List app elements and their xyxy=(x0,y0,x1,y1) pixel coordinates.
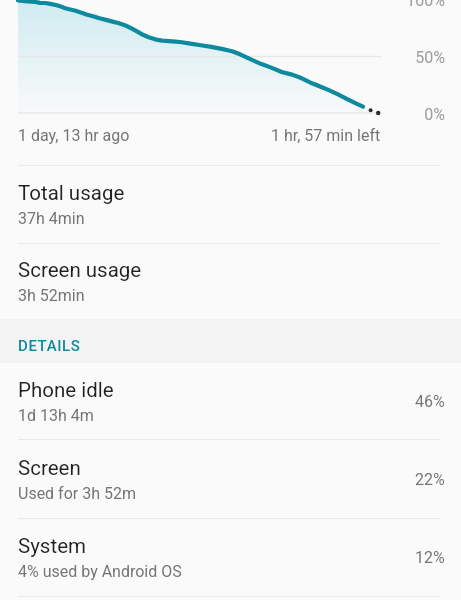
staticText: 3h 52min xyxy=(18,286,85,305)
staticText: Used for 3h 52m xyxy=(18,484,136,503)
staticText: 1d 13h 4m xyxy=(18,406,94,425)
staticText: 50% xyxy=(0,48,445,67)
button[interactable]: System xyxy=(0,519,461,596)
button[interactable]: Screen xyxy=(0,440,461,518)
button[interactable]: Screen usage xyxy=(0,244,461,319)
staticText: 0% xyxy=(0,105,445,124)
staticText: 4% used by Android OS xyxy=(18,562,182,581)
staticText: 46% xyxy=(415,392,445,411)
staticText: 12% xyxy=(415,548,445,567)
other: Battery level history graph xyxy=(0,0,461,118)
staticText: Phone idle xyxy=(18,378,114,402)
staticText: 1 day, 13 hr ago xyxy=(18,126,130,145)
staticText: DETAILS xyxy=(18,337,81,355)
staticText: Screen xyxy=(18,456,81,480)
staticText: 37h 4min xyxy=(18,209,85,228)
staticText: 100% xyxy=(0,0,445,10)
button[interactable]: Total usage xyxy=(0,166,461,243)
button[interactable]: DETAILS xyxy=(0,319,461,363)
staticText: Screen usage xyxy=(18,258,142,282)
staticText: System xyxy=(18,534,87,558)
staticText: 22% xyxy=(415,470,445,489)
staticText: 1 hr, 57 min left xyxy=(271,126,381,145)
button[interactable]: Phone idle xyxy=(0,363,461,439)
staticText: Total usage xyxy=(18,181,125,205)
